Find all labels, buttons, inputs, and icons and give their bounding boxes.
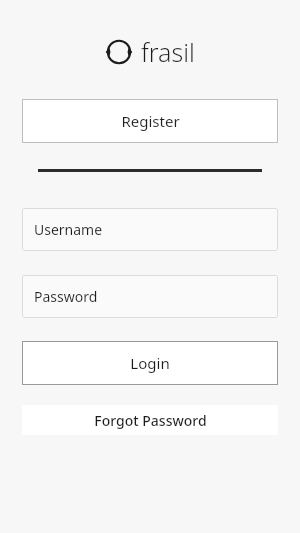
staticText: Password — [34, 287, 98, 306]
button[interactable]: Password — [22, 275, 278, 318]
staticText: Register — [121, 111, 180, 131]
button[interactable]: Register — [22, 99, 278, 143]
staticText: Login — [130, 353, 170, 373]
button[interactable]: Login — [22, 341, 278, 385]
staticText: Forgot Password — [94, 411, 207, 430]
staticText: Username — [34, 220, 103, 239]
staticText: frasil — [141, 35, 195, 69]
button[interactable]: Forgot Password — [22, 405, 278, 435]
button[interactable]: Username — [22, 208, 278, 251]
